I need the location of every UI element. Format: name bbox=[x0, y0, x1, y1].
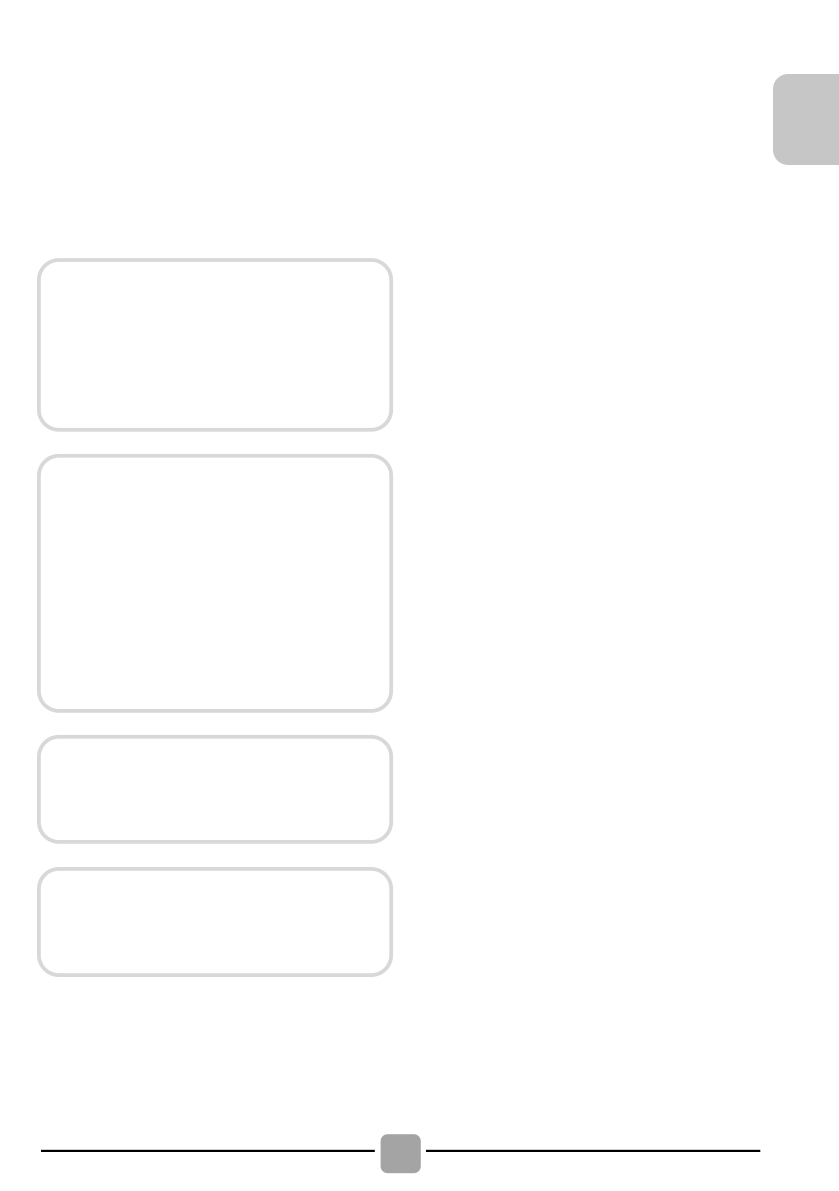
button[interactable]: Card 1 bbox=[39, 260, 391, 430]
button[interactable]: Card 2 bbox=[39, 456, 391, 711]
button[interactable]: Open panel bbox=[773, 74, 839, 165]
button[interactable]: Card 4 bbox=[39, 869, 391, 975]
button[interactable]: Handle bbox=[381, 1134, 421, 1173]
button[interactable]: Card 3 bbox=[39, 737, 391, 842]
